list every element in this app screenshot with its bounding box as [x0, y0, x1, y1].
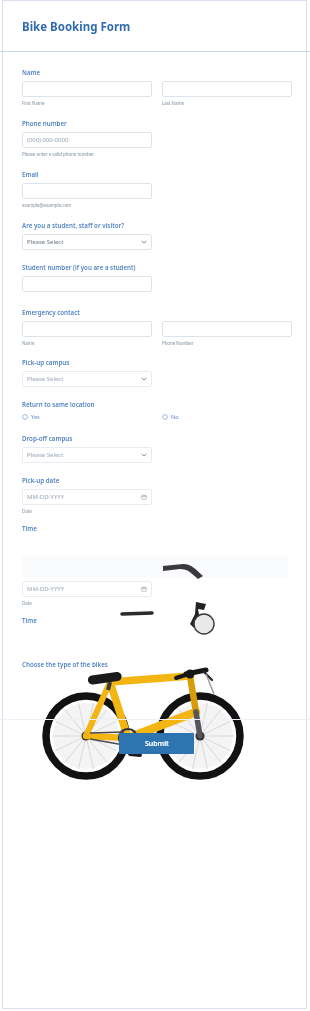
staticText: Date: [22, 600, 32, 606]
button[interactable]: [22, 81, 152, 97]
staticText: Are you a student, staff or visitor?: [22, 221, 125, 229]
staticText: Pick-up campus: [22, 358, 70, 366]
other: Open dropdown: [141, 452, 147, 458]
staticText: Date: [22, 508, 32, 514]
staticText: Phone number: [22, 119, 67, 127]
staticText: (000) 000-0000: [27, 136, 69, 144]
staticText: Please Select: [27, 451, 64, 459]
staticText: Yes: [31, 413, 40, 421]
other: Open dropdown: [141, 239, 147, 245]
staticText: Emergency contact: [22, 308, 80, 316]
button[interactable]: MM-DD-YYYY: [22, 489, 152, 505]
staticText: MM-DD-YYYY: [27, 493, 65, 501]
button[interactable]: [22, 183, 152, 199]
button[interactable]: [162, 81, 292, 97]
button[interactable]: [22, 276, 152, 292]
staticText: Pick-up date: [22, 476, 60, 484]
staticText: No: [171, 413, 179, 421]
button[interactable]: Yes: [22, 413, 162, 421]
button[interactable]: Please Select: [22, 447, 152, 463]
button[interactable]: [22, 321, 152, 337]
staticText: Name: [22, 340, 35, 346]
staticText: Time: [22, 524, 37, 532]
other: Pick date: [141, 494, 147, 500]
staticText: Choose the type of the bikes: [22, 660, 108, 668]
button[interactable]: Please Select: [22, 234, 152, 250]
staticText: Last Name: [162, 100, 184, 106]
staticText: Please Select: [27, 238, 64, 246]
staticText: MM-DD-YYYY: [27, 585, 65, 593]
button[interactable]: [162, 321, 292, 337]
button[interactable]: Please Select: [22, 371, 152, 387]
staticText: First Name: [22, 100, 45, 106]
button[interactable]: No: [162, 413, 179, 421]
staticText: Return to same location: [22, 400, 95, 408]
staticText: Drop-off campus: [22, 434, 73, 442]
staticText: Time: [22, 616, 37, 624]
staticText: Email: [22, 170, 39, 178]
staticText: Student number (if you are a student): [22, 263, 136, 271]
staticText: Name: [22, 68, 41, 76]
staticText: Please Select: [27, 375, 64, 383]
staticText: Phone Number: [162, 340, 194, 346]
staticText: Please enter a valid phone number: [22, 151, 94, 157]
other: Pick date: [141, 586, 147, 592]
other: Open dropdown: [141, 376, 147, 382]
staticText: Submit: [145, 739, 169, 749]
button[interactable]: (000) 000-0000: [22, 132, 152, 148]
button[interactable]: MM-DD-YYYY: [22, 581, 152, 597]
button[interactable]: Submit: [119, 733, 194, 754]
staticText: Bike Booking Form: [22, 19, 131, 35]
staticText: example@example.com: [22, 202, 72, 208]
